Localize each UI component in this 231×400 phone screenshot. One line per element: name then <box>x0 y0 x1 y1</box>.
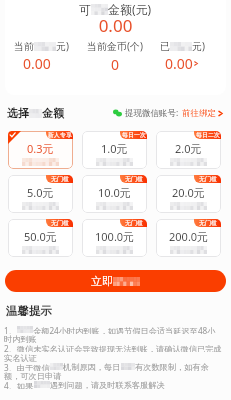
button[interactable]: 立即 <box>5 270 226 292</box>
staticText: 时内到账 <box>4 334 37 343</box>
staticText: 无门槛 <box>125 219 143 227</box>
staticText: 0.00 <box>165 54 193 73</box>
staticText: 无门槛 <box>51 219 69 227</box>
button[interactable]: 50.0元 <box>8 219 73 257</box>
button[interactable]: 100.0元 <box>82 219 147 257</box>
staticText: 当前金币(个) <box>87 39 143 53</box>
staticText: 机制原因，每日 <box>63 362 121 371</box>
button[interactable]: 1.0元 <box>82 131 147 169</box>
button[interactable]: 0.3元 <box>8 131 73 169</box>
staticText: 无门槛 <box>199 175 217 183</box>
staticText: 0.3元 <box>27 141 54 156</box>
staticText: 3、由于微信 <box>4 362 50 371</box>
staticText: 金额 <box>42 106 64 120</box>
staticText: 金额(元) <box>108 1 152 17</box>
staticText: 温馨提示 <box>6 304 52 318</box>
staticText: 10.0元 <box>98 185 131 200</box>
button[interactable]: 2.0元 <box>156 131 221 169</box>
staticText: 50.0元 <box>24 229 57 244</box>
staticText: 无门槛 <box>51 175 69 183</box>
staticText: 遇到问题，请及时联系客服解决 <box>50 380 165 389</box>
staticText: 立即 <box>91 274 113 288</box>
staticText: 每日二次 <box>196 131 220 139</box>
staticText: 前往绑定 <box>182 108 216 119</box>
staticText: 2、微信未实名认证会导致提现无法到账，请确认微信已完成 <box>4 343 222 352</box>
staticText: 4、如果 <box>4 380 34 389</box>
button[interactable]: 10.0元 <box>82 175 147 213</box>
staticText: 实名认证 <box>4 353 37 362</box>
staticText: 200.0元 <box>169 229 209 244</box>
staticText: 0.00 <box>5 14 226 37</box>
staticText: 元) <box>192 39 205 53</box>
staticText: 已 <box>160 40 170 53</box>
staticText: 有次数限制，如有余 <box>135 362 209 371</box>
staticText: 1、 <box>4 325 17 334</box>
staticText: 无门槛 <box>199 219 217 227</box>
staticText: 提现微信账号: <box>125 107 179 119</box>
staticText: 0.00 <box>23 54 51 73</box>
staticText: 金额24小时内到账，如遇节假日会适当延迟至48小 <box>33 325 216 334</box>
button[interactable]: 5.0元 <box>8 175 73 213</box>
button[interactable]: 提现微信账号: <box>113 107 224 119</box>
staticText: 额，可次日申请 <box>4 371 62 380</box>
staticText: 5.0元 <box>27 185 54 200</box>
staticText: 无门槛 <box>125 175 143 183</box>
staticText: 每日一次 <box>122 131 146 139</box>
staticText: 1.0元 <box>101 141 128 156</box>
staticText: 新人专享 <box>48 131 72 139</box>
button[interactable]: 20.0元 <box>156 175 221 213</box>
staticText: 元) <box>56 39 69 53</box>
staticText: 可 <box>79 2 91 17</box>
staticText: 100.0元 <box>95 229 135 244</box>
staticText: 选择 <box>7 106 29 120</box>
button[interactable]: 200.0元 <box>156 219 221 257</box>
staticText: 0 <box>111 55 120 74</box>
staticText: 当前 <box>14 40 34 53</box>
staticText: 20.0元 <box>172 185 205 200</box>
staticText: 2.0元 <box>175 141 202 156</box>
